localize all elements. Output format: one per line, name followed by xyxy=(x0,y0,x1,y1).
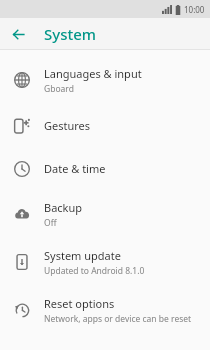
staticText: Gboard xyxy=(44,83,74,95)
staticText: Network, apps or device can be reset xyxy=(44,313,192,325)
button[interactable]: System update xyxy=(0,238,210,286)
staticText: System update xyxy=(44,248,121,263)
staticText: Reset options xyxy=(44,296,115,311)
staticText: Date & time xyxy=(44,161,106,176)
button[interactable]: Back xyxy=(7,23,29,45)
staticText: Off xyxy=(44,217,57,229)
button[interactable]: Backup xyxy=(0,190,210,238)
button[interactable]: Gestures xyxy=(0,104,210,147)
button[interactable]: Languages & input xyxy=(0,56,210,104)
staticText: 10:00 xyxy=(184,4,205,15)
staticText: Backup xyxy=(44,200,83,215)
staticText: Languages & input xyxy=(44,66,142,81)
button[interactable]: Reset options xyxy=(0,286,210,334)
button[interactable]: Date & time xyxy=(0,147,210,190)
staticText: System xyxy=(44,24,97,44)
staticText: Gestures xyxy=(44,118,91,133)
staticText: Updated to Android 8.1.0 xyxy=(44,265,145,277)
